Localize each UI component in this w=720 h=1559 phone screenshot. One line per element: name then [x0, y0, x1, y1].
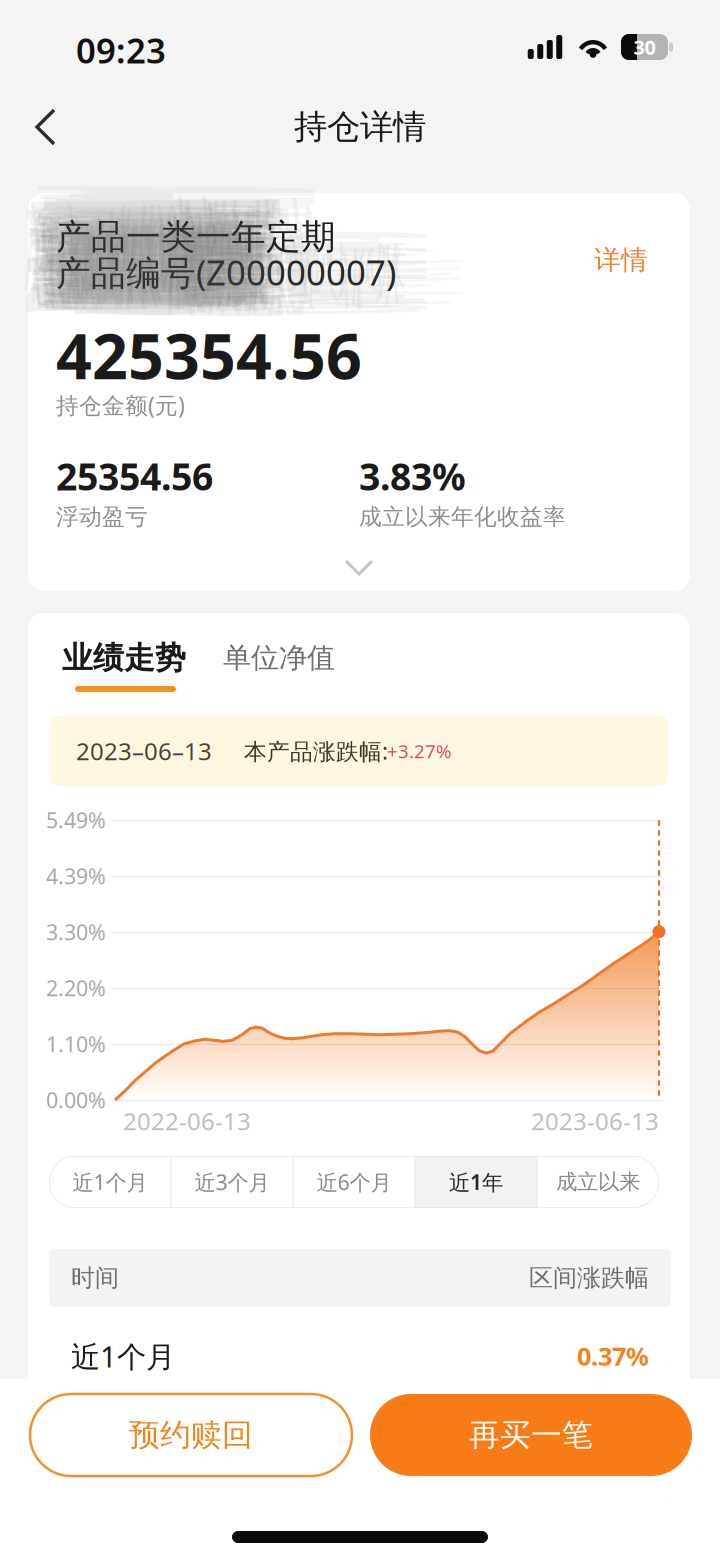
- staticText: 单位净值: [223, 641, 335, 675]
- button[interactable]: 业绩走势: [62, 635, 262, 681]
- staticText: 产品一类一年定期: [56, 216, 336, 258]
- button[interactable]: 返回: [10, 96, 94, 158]
- staticText: 5.49%: [46, 806, 106, 834]
- button[interactable]: 再买一笔: [370, 1394, 692, 1476]
- staticText: 预约赎回: [129, 1416, 253, 1454]
- button[interactable]: 近1年: [415, 1156, 537, 1208]
- staticText: 2023-06-13: [531, 1105, 659, 1137]
- staticText: 详情: [594, 244, 648, 276]
- staticText: 近6个月: [316, 1168, 391, 1196]
- staticText: 3.83%: [359, 451, 466, 501]
- staticText: 近3个月: [194, 1168, 269, 1196]
- staticText: 09:23: [76, 27, 166, 73]
- button[interactable]: 成立以来: [537, 1156, 659, 1208]
- staticText: 2.20%: [46, 974, 106, 1002]
- staticText: 4.39%: [46, 862, 106, 890]
- staticText: +3.27%: [387, 739, 452, 763]
- button[interactable]: 近1个月: [49, 1156, 171, 1208]
- staticText: 30: [633, 34, 655, 60]
- staticText: 时间: [71, 1263, 119, 1293]
- button[interactable]: 单位净值: [223, 635, 423, 681]
- staticText: 浮动盈亏: [56, 503, 148, 531]
- button[interactable]: 展开: [324, 549, 394, 585]
- staticText: 3.30%: [46, 918, 106, 946]
- button[interactable]: 近6个月: [293, 1156, 415, 1208]
- staticText: 425354.56: [56, 313, 362, 397]
- staticText: 2022-06-13: [123, 1105, 251, 1137]
- staticText: 2023–06–13: [76, 735, 212, 767]
- staticText: 近1年: [449, 1168, 503, 1196]
- staticText: 成立以来年化收益率: [359, 503, 566, 531]
- button[interactable]: 近3个月: [171, 1156, 293, 1208]
- staticText: 区间涨跌幅: [529, 1263, 649, 1293]
- staticText: 近1个月: [72, 1168, 147, 1196]
- staticText: 持仓金额(元): [56, 390, 185, 420]
- staticText: 持仓详情: [294, 106, 426, 147]
- staticText: 产品编号(Z00000007): [56, 249, 396, 295]
- button[interactable]: 详情: [594, 239, 704, 281]
- staticText: 0.37%: [577, 1339, 649, 1373]
- staticText: 再买一笔: [469, 1416, 593, 1454]
- staticText: 本产品涨跌幅:: [244, 736, 388, 766]
- staticText: 1.10%: [46, 1030, 106, 1058]
- staticText: 25354.56: [56, 451, 213, 501]
- staticText: 0.00%: [46, 1086, 106, 1114]
- staticText: 近1个月: [71, 1336, 175, 1375]
- staticText: 成立以来: [556, 1169, 640, 1195]
- button[interactable]: 预约赎回: [30, 1394, 352, 1476]
- staticText: 业绩走势: [62, 639, 186, 677]
